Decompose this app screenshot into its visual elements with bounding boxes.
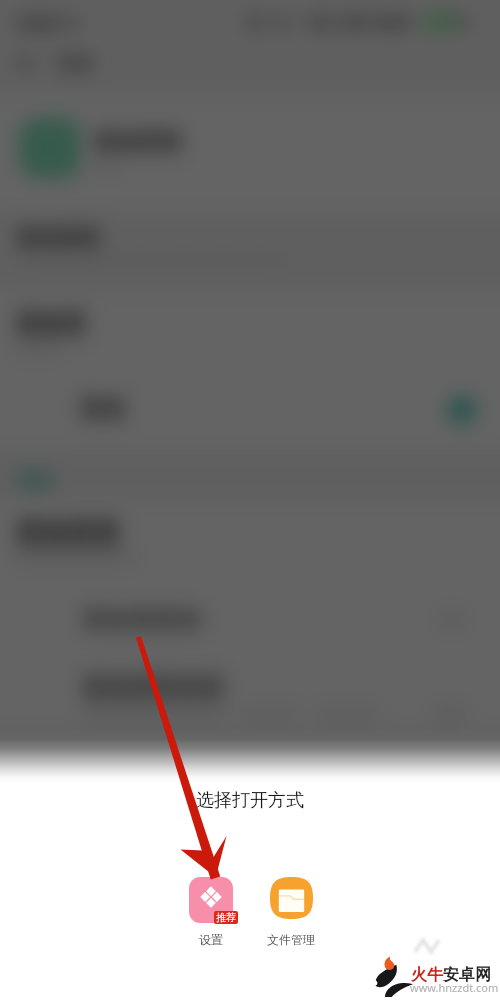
staticText: 火牛 [411,965,443,985]
staticText: 文件管理 [267,932,315,947]
staticText: 设置 [199,932,223,947]
staticText: 推荐 [216,911,236,924]
staticText: 安卓网 [443,965,491,985]
staticText: 选择打开方式 [0,789,500,812]
button[interactable]: 文件管理 [246,877,336,947]
button[interactable]: 推荐 [166,877,256,947]
staticText: www.hnzzdt.com [410,980,499,995]
